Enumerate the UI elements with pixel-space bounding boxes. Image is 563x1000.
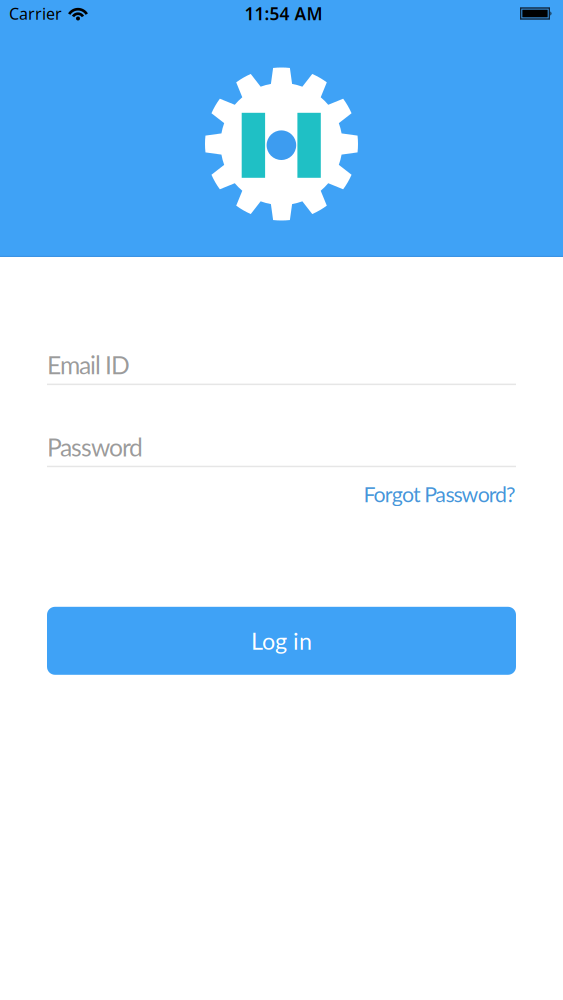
button[interactable]: Forgot Password? bbox=[363, 481, 516, 507]
staticText: Carrier bbox=[9, 3, 62, 24]
staticText: Log in bbox=[251, 627, 312, 655]
button[interactable]: Email ID bbox=[47, 350, 516, 385]
button[interactable]: Log in bbox=[47, 607, 516, 675]
button[interactable]: Password bbox=[47, 432, 516, 467]
staticText: Forgot Password? bbox=[363, 481, 516, 507]
staticText: 11:54 AM bbox=[244, 2, 322, 25]
staticText: Email ID bbox=[47, 350, 130, 380]
staticText: Password bbox=[47, 432, 143, 462]
